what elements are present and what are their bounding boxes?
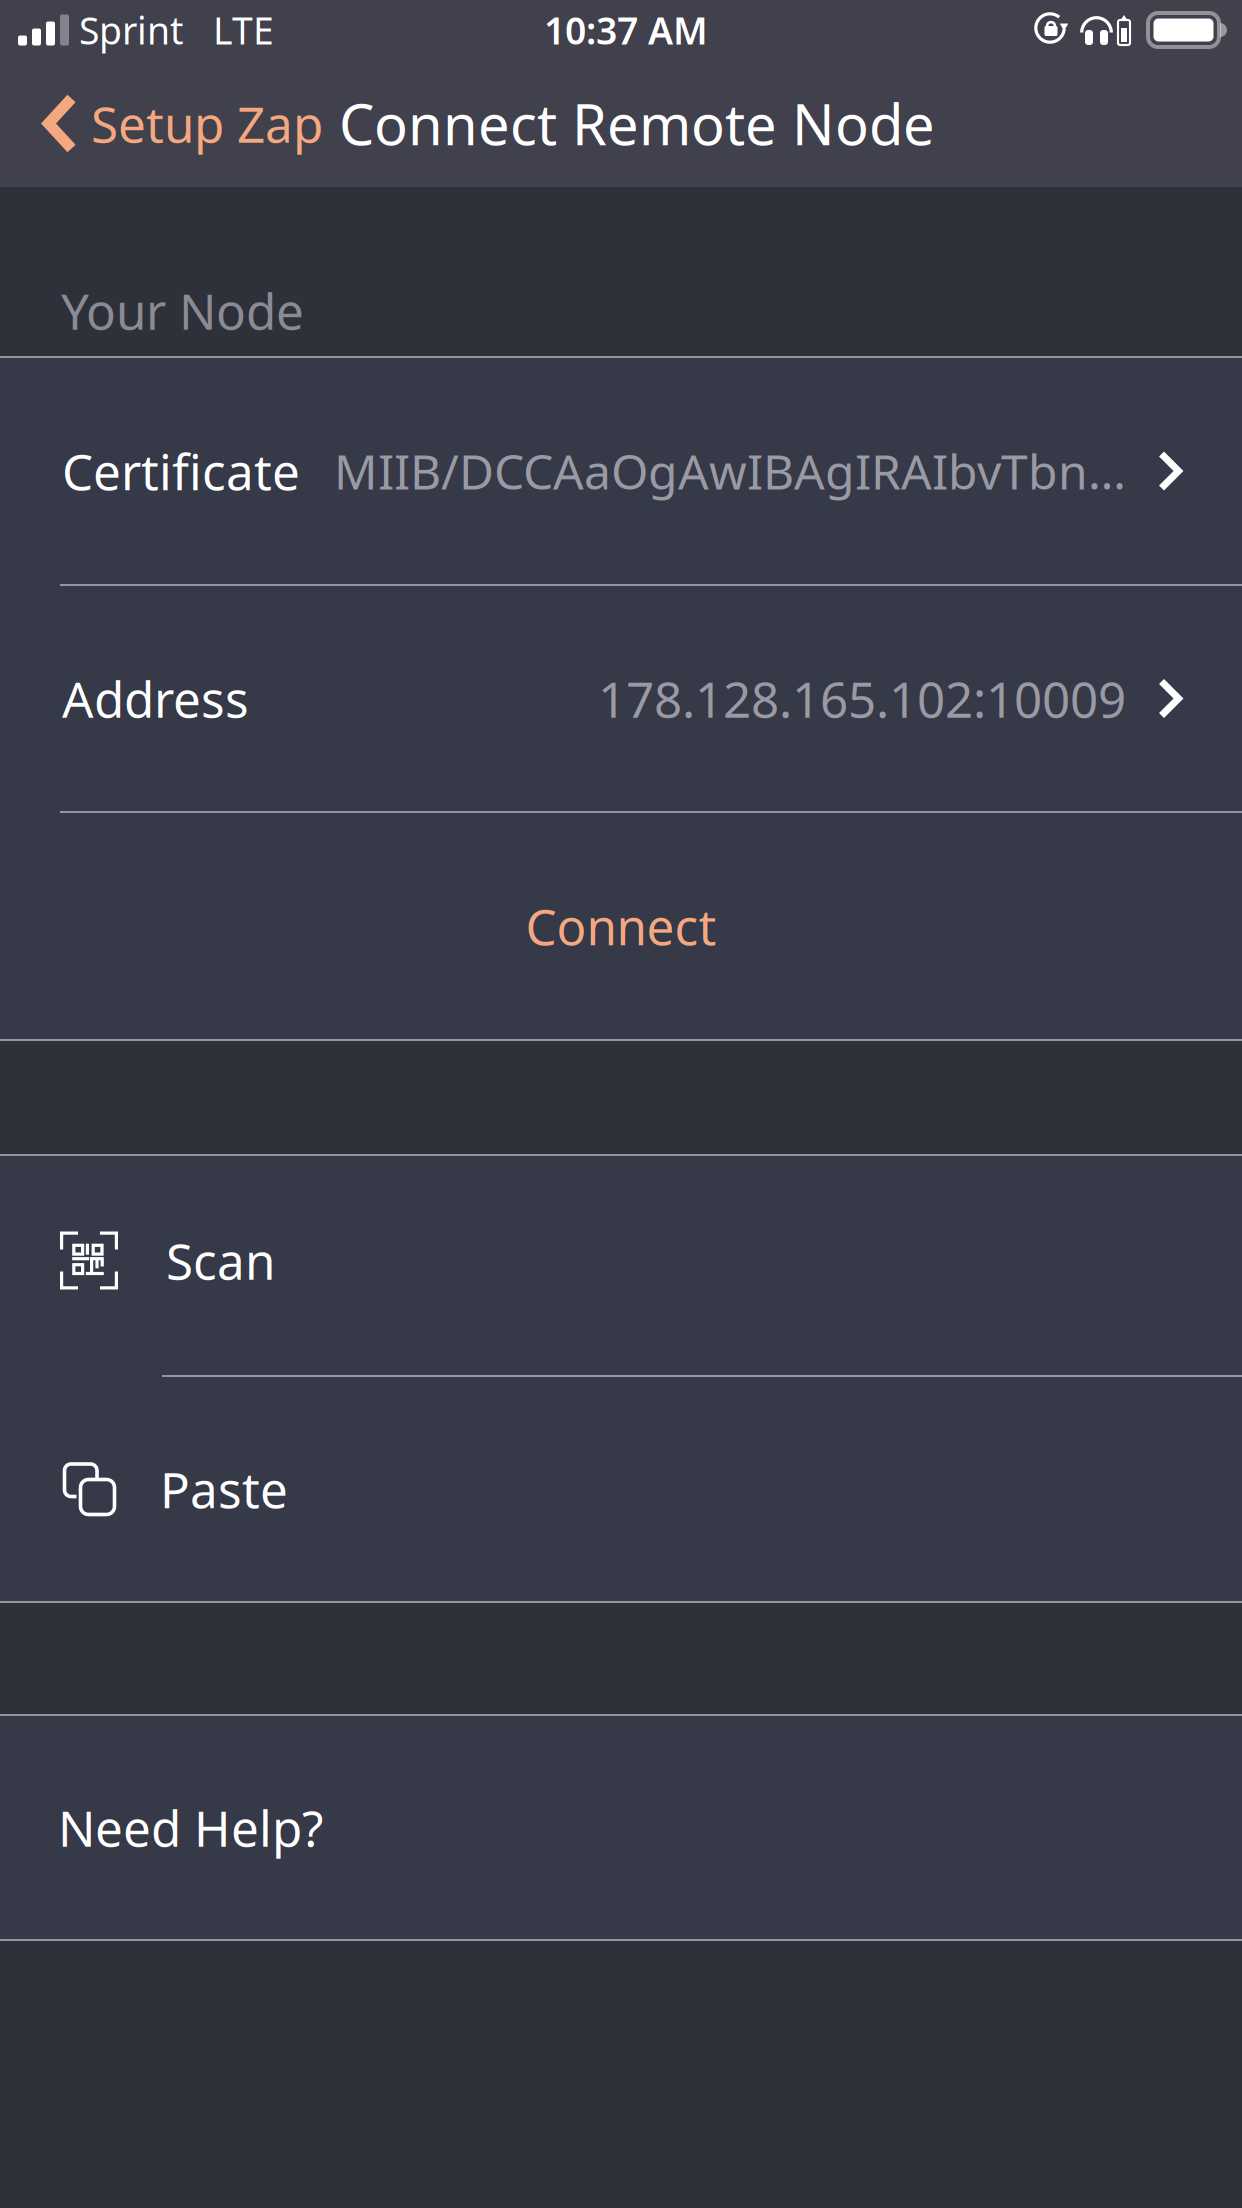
staticText: 10:37 AM (544, 5, 708, 55)
staticText: Address (62, 666, 249, 731)
button[interactable]: Need Help? (0, 1716, 1242, 1939)
button[interactable]: Certificate (0, 358, 1242, 584)
staticText: Connect (525, 893, 716, 959)
staticText: 178.128.165.102:10009 (598, 666, 1126, 731)
button[interactable]: Address (0, 586, 1242, 811)
button[interactable]: Setup Zap (0, 60, 333, 187)
staticText: Scan (166, 1228, 275, 1293)
staticText: Setup Zap (91, 91, 323, 156)
staticText: Paste (160, 1456, 288, 1522)
button[interactable]: Paste (0, 1377, 1242, 1601)
button[interactable]: Scan (0, 1156, 1242, 1375)
staticText: Need Help? (58, 1795, 323, 1860)
staticText: Certificate (62, 438, 300, 504)
staticText: Sprint (79, 5, 183, 55)
staticText: Connect Remote Node (339, 86, 935, 161)
button[interactable]: Connect (0, 813, 1242, 1039)
staticText: MIIB/DCCAaOgAwIBAgIRAIbvTbn… (334, 439, 1126, 503)
staticText: Your Node (61, 278, 304, 343)
staticText: LTE (213, 5, 274, 55)
